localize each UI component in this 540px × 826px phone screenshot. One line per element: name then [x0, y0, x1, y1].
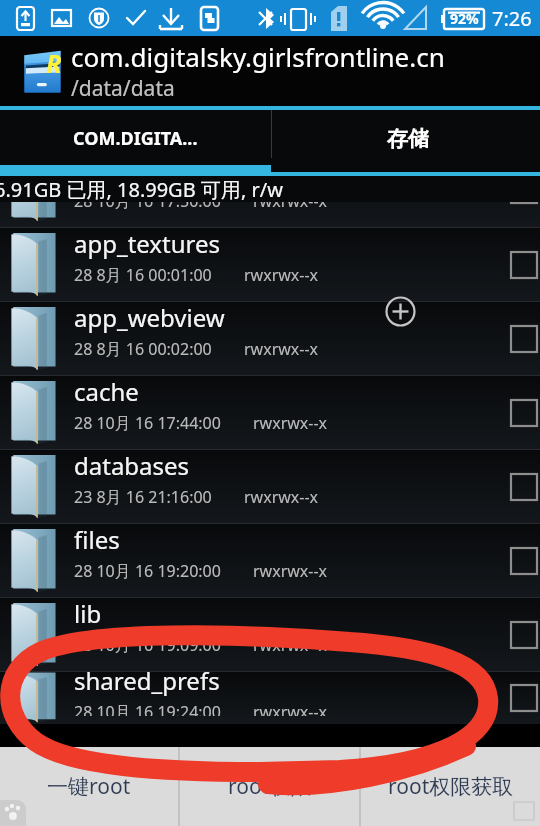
staticText: 7:26 [492, 5, 532, 32]
staticText: rwxrwx--x [253, 634, 328, 656]
staticText: /data/data [71, 74, 175, 103]
staticText: com.digitalsky.girlsfrontline.cn [71, 39, 445, 74]
staticText: 28 8月 16 00:02:00 [74, 338, 212, 360]
staticText: 28 10月 16 17:50:00 [74, 190, 221, 212]
staticText: 28 10月 16 19:09:00 [74, 634, 221, 656]
button[interactable]: 存储 [272, 110, 540, 165]
button[interactable]: lib [0, 598, 540, 671]
staticText: rwxrwx--x [244, 486, 319, 508]
button[interactable]: 一键root [0, 747, 178, 826]
button[interactable]: Select [501, 464, 540, 510]
staticText: 6.91GB 已用, 18.99GB 可用, r/w [0, 176, 283, 202]
staticText: app_Prefs [74, 176, 185, 186]
staticText: rwxrwx--x [253, 412, 328, 434]
staticText: databases [74, 449, 190, 482]
button[interactable]: Add [385, 296, 416, 327]
staticText: root权限获取 [388, 772, 514, 801]
staticText: rwxrwx--x [253, 190, 328, 212]
staticText: root权限 [228, 772, 312, 801]
staticText: rwxrwx--x [244, 264, 319, 286]
staticText: shared_prefs [74, 664, 220, 697]
button[interactable]: files [0, 524, 540, 597]
button[interactable]: app_textures [0, 228, 540, 301]
button[interactable]: Select [501, 675, 540, 721]
button[interactable]: Ad [510, 796, 540, 826]
staticText: 28 10月 16 17:44:00 [74, 412, 221, 434]
button[interactable]: Select [501, 538, 540, 584]
staticText: app_webview [74, 301, 225, 334]
staticText: files [74, 523, 120, 556]
staticText: cache [74, 375, 139, 408]
button[interactable]: App shortcut [0, 800, 26, 826]
button[interactable]: cache [0, 376, 540, 449]
staticText: R [46, 46, 62, 80]
button[interactable]: shared_prefs [0, 672, 540, 724]
button[interactable]: Select [501, 390, 540, 436]
button[interactable]: databases [0, 450, 540, 523]
staticText: rwxrwx--x [253, 560, 328, 582]
button[interactable]: COM.DIGITA... [0, 110, 271, 165]
button[interactable]: Select [501, 612, 540, 658]
staticText: 23 8月 16 21:16:00 [74, 486, 212, 508]
button[interactable]: R [0, 36, 540, 106]
button[interactable]: app_webview [0, 302, 540, 375]
staticText: 92% [450, 9, 479, 28]
staticText: COM.DIGITA... [73, 126, 198, 151]
staticText: lib [74, 597, 102, 630]
staticText: 一键root [47, 772, 131, 801]
staticText: 28 8月 16 00:01:00 [74, 264, 212, 286]
button[interactable]: Select [501, 242, 540, 288]
button[interactable]: root权限 [180, 747, 359, 826]
button[interactable]: root权限获取 [361, 747, 540, 826]
button[interactable]: Select [501, 316, 540, 362]
staticText: 28 10月 16 19:24:00 [74, 701, 221, 716]
staticText: rwxrwx--x [244, 338, 319, 360]
staticText: 28 10月 16 19:20:00 [74, 560, 221, 582]
staticText: rwxrwx--x [253, 701, 328, 716]
staticText: 存储 [387, 126, 429, 152]
button[interactable]: Select [501, 176, 540, 213]
staticText: app_textures [74, 227, 221, 260]
